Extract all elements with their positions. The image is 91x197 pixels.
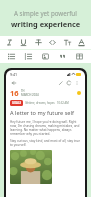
button[interactable]: Edit bbox=[57, 79, 65, 87]
staticText: Hey future me, I hope you're doing well.… bbox=[10, 120, 81, 136]
button[interactable]: Back bbox=[10, 79, 18, 87]
button[interactable]: Text color bbox=[76, 37, 87, 48]
button[interactable]: Insert image bbox=[40, 51, 51, 62]
staticText: MARCH 2024 bbox=[21, 93, 39, 97]
staticText: 10:32 AM bbox=[57, 101, 69, 105]
staticText: writing experience bbox=[11, 19, 81, 29]
button[interactable]: Bulleted list bbox=[6, 51, 17, 62]
staticText: 9:41 bbox=[10, 72, 18, 77]
button[interactable]: Undo bbox=[65, 79, 73, 87]
button[interactable]: Numbered list bbox=[23, 51, 34, 62]
button[interactable]: Insert table bbox=[74, 51, 85, 62]
staticText: A letter to my future self bbox=[10, 109, 74, 117]
staticText: lifetime, dreams, hopes bbox=[25, 101, 55, 105]
staticText: TH bbox=[21, 89, 25, 93]
staticText: GOALS bbox=[12, 101, 21, 105]
button[interactable]: Mood bbox=[77, 91, 81, 95]
button[interactable]: Italic bbox=[4, 37, 15, 48]
button[interactable]: Text size bbox=[62, 37, 73, 48]
button[interactable]: Attached photo bbox=[10, 150, 52, 184]
button[interactable]: More options bbox=[73, 79, 81, 87]
button[interactable]: Underline bbox=[18, 37, 29, 48]
button[interactable]: GOALS bbox=[12, 101, 21, 105]
button[interactable]: Code block bbox=[47, 37, 58, 48]
staticText: Stay curious, stay kind, and most of all… bbox=[10, 139, 81, 147]
button[interactable]: Strikethrough bbox=[33, 37, 44, 48]
staticText: A simple yet powerful bbox=[14, 9, 77, 17]
staticText: 16 bbox=[10, 88, 19, 98]
button[interactable]: Quote bbox=[57, 51, 68, 62]
